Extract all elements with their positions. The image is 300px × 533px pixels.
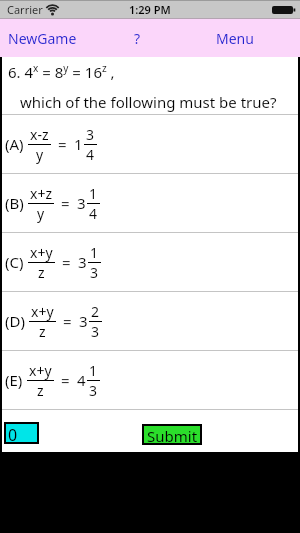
staticText: x+y bbox=[30, 243, 53, 262]
staticText: x+z bbox=[30, 184, 52, 203]
staticText: (D) bbox=[5, 311, 25, 331]
staticText: NewGame bbox=[8, 29, 77, 48]
staticText: 3 bbox=[91, 322, 100, 341]
staticText: which of the following must be true? bbox=[20, 92, 277, 112]
staticText: 3 bbox=[86, 125, 95, 144]
staticText: y bbox=[37, 204, 45, 223]
staticText: 6. 4x = 8y = 16z , bbox=[8, 61, 115, 82]
button[interactable]: Submit bbox=[144, 426, 200, 443]
button[interactable]: (D) bbox=[0, 292, 300, 350]
staticText: (B) bbox=[5, 193, 24, 213]
staticText: 3 bbox=[90, 263, 99, 282]
button[interactable]: (E) bbox=[0, 351, 300, 409]
staticText: y bbox=[36, 145, 44, 164]
staticText: 3 bbox=[89, 381, 98, 400]
staticText: 3 bbox=[79, 311, 88, 331]
staticText: x-z bbox=[30, 125, 49, 144]
staticText: = bbox=[58, 134, 67, 154]
button[interactable]: 0 bbox=[6, 424, 37, 442]
button[interactable]: (B) bbox=[0, 174, 300, 232]
staticText: 3 bbox=[78, 252, 87, 272]
staticText: Submit bbox=[147, 426, 198, 443]
staticText: 1 bbox=[90, 243, 99, 262]
button[interactable]: NewGame bbox=[0, 25, 81, 52]
staticText: 4 bbox=[86, 145, 95, 164]
staticText: 3 bbox=[77, 193, 86, 213]
staticText: = bbox=[61, 193, 70, 213]
staticText: Menu bbox=[216, 29, 254, 48]
staticText: 2 bbox=[91, 302, 100, 321]
staticText: 1 bbox=[74, 134, 83, 154]
staticText: = bbox=[62, 252, 71, 272]
staticText: x+y bbox=[29, 361, 52, 380]
button[interactable]: (A) bbox=[0, 115, 300, 173]
staticText: (C) bbox=[5, 252, 24, 272]
staticText: 4 bbox=[77, 370, 86, 390]
staticText: 1 bbox=[89, 184, 98, 203]
staticText: = bbox=[61, 370, 70, 390]
staticText: (A) bbox=[5, 134, 24, 154]
staticText: z bbox=[37, 381, 44, 400]
staticText: = bbox=[63, 311, 72, 331]
staticText: z bbox=[38, 263, 45, 282]
staticText: 1 bbox=[89, 361, 98, 380]
staticText: 0 bbox=[8, 424, 18, 442]
staticText: Carrier bbox=[7, 2, 43, 17]
staticText: ? bbox=[134, 29, 141, 48]
button[interactable]: Menu bbox=[212, 25, 300, 52]
staticText: 1:29 PM bbox=[129, 2, 171, 17]
staticText: z bbox=[39, 322, 46, 341]
staticText: 4 bbox=[89, 204, 98, 223]
staticText: x+y bbox=[31, 302, 54, 321]
staticText: (E) bbox=[5, 370, 23, 390]
button[interactable]: ? bbox=[130, 25, 145, 52]
button[interactable]: (C) bbox=[0, 233, 300, 291]
